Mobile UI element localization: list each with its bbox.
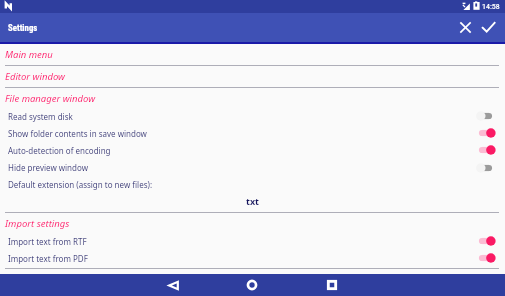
button[interactable]: Import text from RTF [0, 234, 505, 251]
button[interactable]: Import text from PDF [0, 251, 505, 268]
staticText: File manager window [5, 92, 96, 105]
staticText: Hide preview window [8, 162, 88, 173]
button[interactable]: Discard [454, 13, 477, 42]
staticText: Editor window [5, 70, 65, 83]
button[interactable]: txt [0, 193, 505, 212]
staticText: Import text from RTF [8, 236, 87, 247]
staticText: txt [246, 195, 260, 207]
button[interactable]: Recent apps [318, 274, 346, 296]
staticText: Auto-detection of encoding [8, 145, 111, 156]
button[interactable]: Auto-detection of encoding [0, 143, 505, 160]
staticText: Show folder contents in save window [8, 128, 147, 139]
staticText: Import text from PDF [8, 253, 88, 264]
staticText: Main menu [5, 48, 53, 61]
staticText: 14:58 [482, 2, 500, 11]
staticText: Read system disk [8, 111, 73, 122]
staticText: Default extension (assign to new files): [8, 179, 153, 190]
button[interactable]: Back [159, 274, 187, 296]
button[interactable]: Default extension (assign to new files): [0, 176, 505, 193]
button[interactable]: Save [477, 13, 500, 42]
button[interactable]: Show folder contents in save window [0, 126, 505, 143]
button[interactable]: Hide preview window [0, 159, 505, 176]
button[interactable]: Home [238, 274, 266, 296]
button[interactable]: Read system disk [0, 109, 505, 126]
staticText: Settings [8, 23, 38, 33]
staticText: Import settings [5, 217, 70, 230]
